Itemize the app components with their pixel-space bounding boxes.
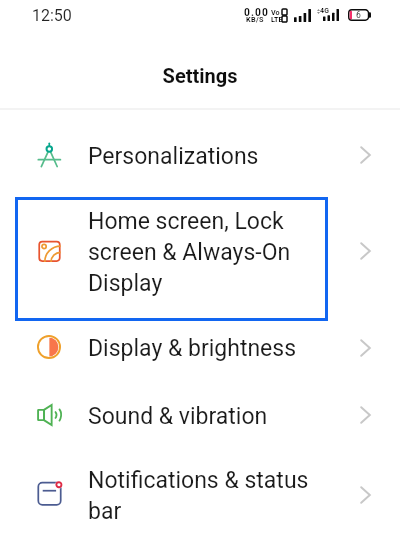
staticText: Settings — [0, 64, 400, 87]
staticText: LTE — [271, 15, 283, 23]
staticText: Home screen, Lock screen & Always-On Dis… — [88, 204, 291, 297]
button[interactable]: Display and brightness — [0, 321, 400, 374]
staticText: KB/S — [246, 15, 264, 24]
button[interactable]: Home screen, Lock screen and Always-On D… — [15, 197, 328, 321]
staticText: Display & brightness — [88, 331, 297, 362]
staticText: Sound & vibration — [88, 399, 268, 430]
staticText: 12:50 — [32, 6, 72, 25]
staticText: 4G — [320, 7, 330, 15]
button[interactable]: Notifications and status bar — [0, 455, 400, 549]
staticText: Personalizations — [88, 139, 259, 170]
staticText: 0.00 — [244, 6, 269, 18]
staticText: Notifications & status bar — [88, 463, 309, 525]
button[interactable]: Sound and vibration — [0, 374, 400, 455]
staticText: Vo — [271, 8, 280, 16]
staticText: 6 — [356, 10, 361, 20]
button[interactable]: Personalizations — [0, 109, 400, 197]
